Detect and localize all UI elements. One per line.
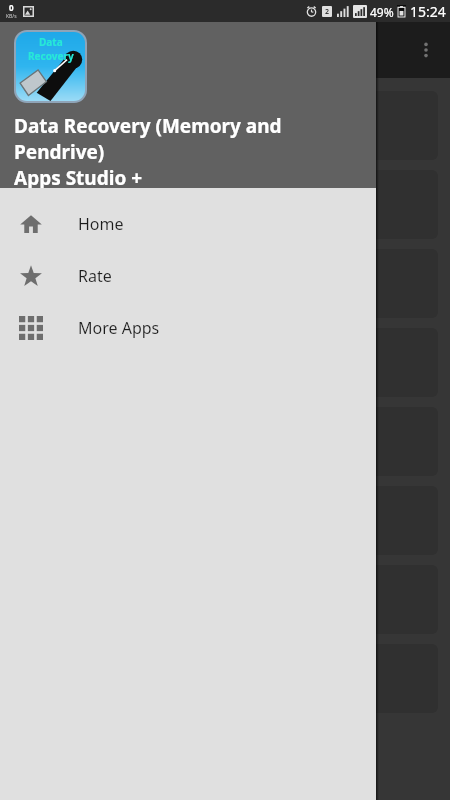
staticText: Data	[39, 35, 63, 49]
staticText: Home	[78, 213, 124, 235]
staticText: 2	[325, 7, 330, 17]
staticText: Data Recovery (Memory and Pendrive)	[14, 113, 362, 165]
button[interactable]: Restore Photos	[12, 91, 438, 160]
staticText: 49%	[370, 4, 394, 20]
button[interactable]: Data	[0, 22, 376, 188]
button[interactable]: Rate	[0, 250, 376, 302]
staticText: More Apps	[78, 317, 160, 339]
staticText: 15:24	[410, 2, 446, 21]
button[interactable]: Recover deleted files for Pendrive	[12, 249, 438, 318]
staticText: Recover deleted files for Pendrive	[28, 271, 330, 296]
staticText: 0	[9, 2, 14, 13]
button[interactable]: More Apps	[0, 302, 376, 354]
button[interactable]: Home	[0, 198, 376, 250]
button[interactable]: More options	[402, 26, 450, 74]
button[interactable]: Backup & Restoration	[12, 486, 438, 555]
button[interactable]: App Settings	[12, 644, 438, 713]
button[interactable]: Deleted Videos	[12, 407, 438, 476]
staticText: Restore Photos	[28, 113, 164, 138]
button[interactable]: Restore Documents	[12, 328, 438, 397]
button[interactable]: Clean Junk Files	[12, 565, 438, 634]
staticText: KB/s	[6, 13, 17, 20]
staticText: Recovery	[28, 49, 74, 63]
button[interactable]: Scan Memory Card	[12, 170, 438, 239]
staticText: Apps Studio +	[14, 165, 143, 188]
staticText: Data Recovery	[16, 37, 147, 63]
staticText: Rate	[78, 265, 112, 287]
